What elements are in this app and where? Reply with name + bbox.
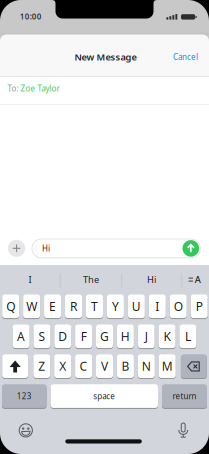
button[interactable]	[181, 354, 207, 378]
staticText: I	[29, 273, 32, 285]
button[interactable]: Y	[107, 294, 124, 318]
staticText: X	[59, 358, 66, 374]
staticText: L	[185, 328, 191, 344]
staticText: G	[100, 328, 109, 344]
staticText: R	[70, 298, 77, 314]
staticText: J	[145, 328, 148, 344]
button[interactable]: B	[117, 354, 134, 378]
staticText: Hi	[147, 273, 156, 285]
staticText: space	[93, 391, 115, 401]
staticText: A	[17, 328, 25, 344]
button[interactable]: The	[65, 269, 117, 289]
button[interactable]: K	[159, 324, 176, 348]
staticText: K	[164, 328, 171, 344]
staticText: H	[121, 328, 130, 344]
staticText: New Message	[74, 51, 136, 63]
button[interactable]: A	[188, 273, 200, 285]
staticText: V	[101, 358, 108, 374]
button[interactable]: 123	[2, 384, 46, 408]
staticText: M	[162, 358, 173, 374]
staticText: I	[155, 298, 159, 314]
button[interactable]: C	[75, 354, 92, 378]
button[interactable]: G	[96, 324, 113, 348]
button[interactable]: Hi	[127, 269, 177, 289]
button[interactable]: U	[128, 294, 145, 318]
staticText: A	[195, 273, 201, 285]
button[interactable]	[32, 239, 200, 258]
button[interactable]: P	[191, 294, 208, 318]
staticText: E	[49, 298, 56, 314]
staticText: B	[121, 358, 129, 374]
button[interactable]: I	[5, 269, 55, 289]
staticText: To:	[7, 83, 18, 94]
button[interactable]	[8, 240, 25, 257]
button[interactable]: F	[75, 324, 92, 348]
staticText: The	[83, 273, 99, 285]
button[interactable]: E	[44, 294, 61, 318]
button[interactable]: X	[54, 354, 71, 378]
button[interactable]: V	[96, 354, 113, 378]
button[interactable]: R	[65, 294, 82, 318]
staticText: Y	[112, 298, 119, 314]
staticText: N	[142, 358, 151, 374]
button[interactable]: space	[50, 384, 158, 408]
button[interactable]: Cancel	[173, 52, 198, 62]
button[interactable]: A	[13, 324, 30, 348]
staticText: O	[174, 298, 183, 314]
button[interactable]: O	[170, 294, 187, 318]
button[interactable]: H	[117, 324, 134, 348]
button[interactable]: D	[54, 324, 71, 348]
staticText: F	[81, 328, 87, 344]
staticText: S	[38, 328, 45, 344]
staticText: C	[80, 358, 88, 374]
staticText: Q	[6, 298, 15, 314]
staticText: D	[58, 328, 67, 344]
button[interactable]: N	[138, 354, 155, 378]
button[interactable]: T	[86, 294, 103, 318]
button[interactable]: M	[159, 354, 176, 378]
staticText: Z	[38, 358, 45, 374]
button[interactable]	[18, 423, 33, 438]
button[interactable]	[178, 422, 188, 438]
button[interactable]: Q	[2, 294, 19, 318]
button[interactable]: return	[162, 384, 207, 408]
staticText: Hi	[42, 243, 50, 254]
button[interactable]	[182, 240, 199, 257]
staticText: Cancel	[173, 52, 198, 62]
staticText: W	[26, 298, 37, 314]
button[interactable]	[2, 354, 28, 378]
staticText: P	[196, 298, 203, 314]
staticText: Zoe Taylor	[20, 83, 59, 94]
button[interactable]: J	[138, 324, 155, 348]
staticText: T	[91, 298, 98, 314]
staticText: U	[132, 298, 141, 314]
button[interactable]: Z	[33, 354, 50, 378]
staticText: return	[172, 391, 196, 401]
staticText: 123	[17, 391, 32, 401]
button[interactable]: L	[179, 324, 196, 348]
button[interactable]: I	[149, 294, 166, 318]
staticText: 10:00	[20, 11, 42, 22]
button[interactable]: W	[23, 294, 40, 318]
button[interactable]: S	[33, 324, 50, 348]
button[interactable]: To:	[7, 83, 59, 94]
